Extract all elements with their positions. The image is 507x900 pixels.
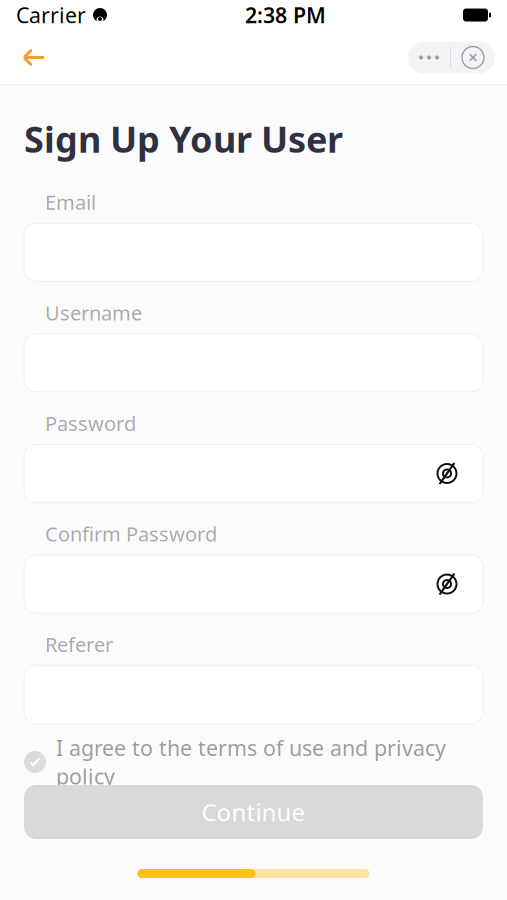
button[interactable] [24,444,483,502]
staticText: Carrier [16,1,86,29]
button[interactable]: Close [451,41,495,73]
button[interactable]: Continue [24,785,483,839]
staticText: Username [45,299,142,326]
button[interactable]: More options [408,41,450,73]
staticText: Email [45,189,96,215]
button[interactable]: I agree to the terms of use and privacy … [0,745,507,779]
staticText: Continue [201,796,305,828]
staticText: Password [45,410,136,436]
staticText: 2:38 PM [245,1,326,29]
staticText: Referer [45,631,113,658]
button[interactable] [24,555,483,613]
staticText: I agree to the terms of use and privacy … [56,734,446,790]
button[interactable]: Back [12,35,56,79]
staticText: Sign Up Your User [24,115,343,163]
staticText: Confirm Password [45,520,217,547]
